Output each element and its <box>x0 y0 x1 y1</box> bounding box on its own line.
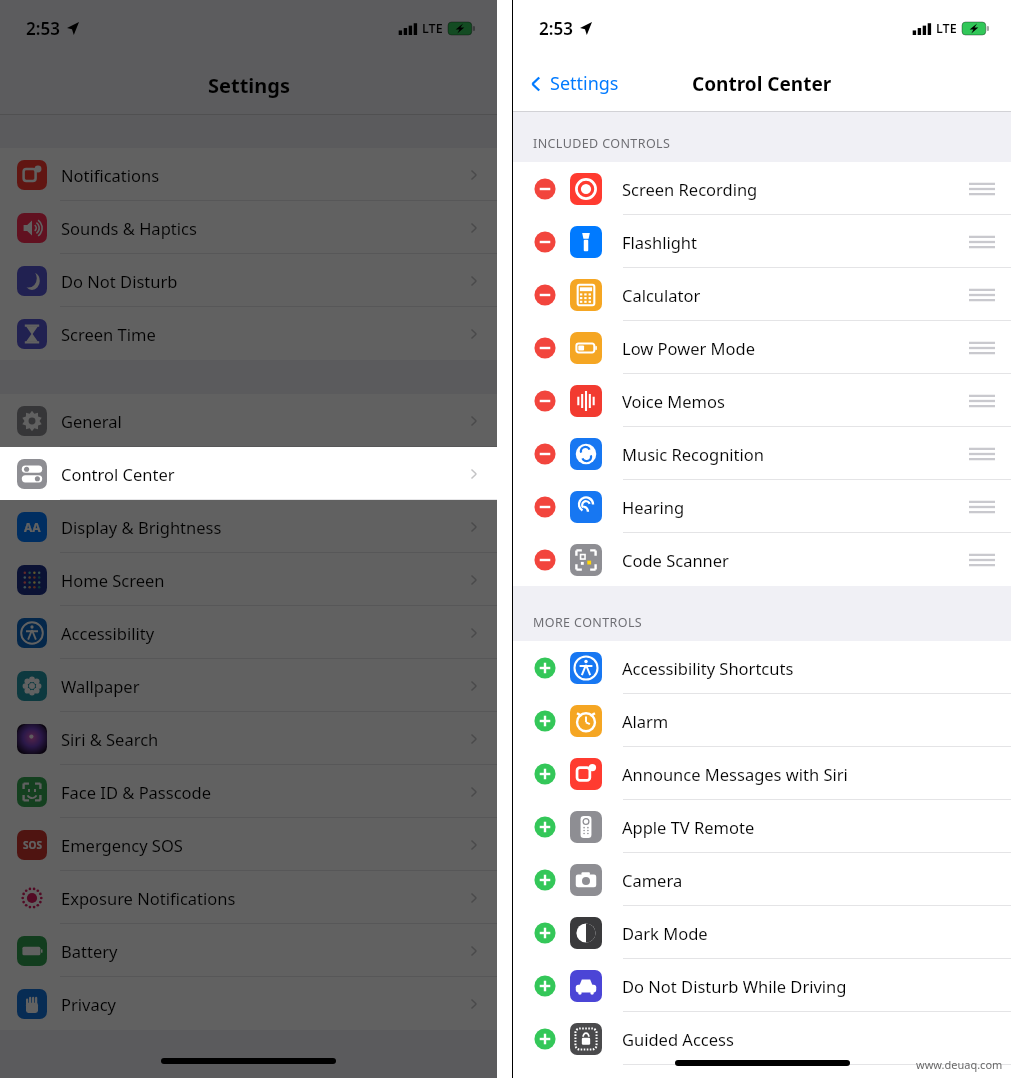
other: Reorder Hearing <box>969 499 995 515</box>
button[interactable]: Add Do Not Disturb While Driving <box>533 974 557 998</box>
button[interactable]: Remove Screen Recording <box>533 177 557 201</box>
staticText: Do Not Disturb While Driving <box>622 975 847 997</box>
staticText: Face ID & Passcode <box>61 781 212 803</box>
staticText: Voice Memos <box>622 390 725 412</box>
staticText: LTE <box>936 20 957 37</box>
button[interactable]: Do Not Disturb <box>0 254 497 307</box>
button[interactable]: Remove Music Recognition <box>513 427 1011 480</box>
staticText: Control Center <box>61 463 175 485</box>
button[interactable]: Remove Calculator <box>513 268 1011 321</box>
staticText: Announce Messages with Siri <box>622 763 848 785</box>
button[interactable]: Add Guided Access <box>533 1027 557 1051</box>
staticText: Settings <box>550 71 619 96</box>
staticText: Guided Access <box>622 1028 734 1050</box>
button[interactable]: Add Accessibility Shortcuts <box>513 641 1011 694</box>
button[interactable]: Home Screen <box>0 553 497 606</box>
button[interactable]: Add Dark Mode <box>533 921 557 945</box>
button[interactable]: Remove Hearing <box>513 480 1011 533</box>
button[interactable]: Notifications <box>0 148 497 201</box>
staticText: Exposure Notifications <box>61 887 236 909</box>
button[interactable]: Remove Calculator <box>533 283 557 307</box>
button[interactable]: Add Announce Messages with Siri <box>533 762 557 786</box>
staticText: General <box>61 410 122 432</box>
staticText: INCLUDED CONTROLS <box>533 135 671 152</box>
button[interactable]: Remove Low Power Mode <box>533 336 557 360</box>
staticText: Sounds & Haptics <box>61 217 197 239</box>
staticText: Code Scanner <box>622 549 729 571</box>
button[interactable]: Settings <box>527 71 619 96</box>
staticText: Notifications <box>61 164 160 186</box>
staticText: www.deuaq.com <box>916 1057 1003 1072</box>
other: Reorder Calculator <box>969 287 995 303</box>
staticText: MORE CONTROLS <box>533 614 643 631</box>
staticText: Hearing <box>622 496 685 518</box>
button[interactable]: Add Camera <box>533 868 557 892</box>
button[interactable]: Sounds & Haptics <box>0 201 497 254</box>
button[interactable]: Add Alarm <box>513 694 1011 747</box>
button[interactable]: Remove Flashlight <box>533 230 557 254</box>
staticText: AA <box>24 519 41 535</box>
other: Reorder Music Recognition <box>969 446 995 462</box>
staticText: Music Recognition <box>622 443 764 465</box>
other: Reorder Code Scanner <box>969 552 995 568</box>
button[interactable]: Add Dark Mode <box>513 906 1011 959</box>
staticText: Display & Brightness <box>61 516 222 538</box>
button[interactable]: Wallpaper <box>0 659 497 712</box>
button[interactable]: Control Center <box>0 447 497 500</box>
staticText: Dark Mode <box>622 922 708 944</box>
other: Reorder Voice Memos <box>969 393 995 409</box>
button[interactable]: Remove Code Scanner <box>533 548 557 572</box>
staticText: 2:53 <box>26 17 60 40</box>
button[interactable]: Add Camera <box>513 853 1011 906</box>
button[interactable]: Siri & Search <box>0 712 497 765</box>
button[interactable]: Remove Voice Memos <box>533 389 557 413</box>
button[interactable]: Accessibility <box>0 606 497 659</box>
other: Reorder Screen Recording <box>969 181 995 197</box>
staticText: Camera <box>622 869 683 891</box>
button[interactable]: Add Apple TV Remote <box>513 800 1011 853</box>
button[interactable]: Privacy <box>0 977 497 1030</box>
other: Reorder Low Power Mode <box>969 340 995 356</box>
button[interactable]: Face ID & Passcode <box>0 765 497 818</box>
staticText: Wallpaper <box>61 675 140 697</box>
staticText: Screen Time <box>61 323 156 345</box>
staticText: Emergency SOS <box>61 834 183 856</box>
staticText: Home Screen <box>61 569 165 591</box>
button[interactable]: Remove Flashlight <box>513 215 1011 268</box>
button[interactable]: Screen Time <box>0 307 497 360</box>
staticText: Flashlight <box>622 231 697 253</box>
button[interactable]: Remove Hearing <box>533 495 557 519</box>
staticText: 2:53 <box>539 17 573 40</box>
staticText: Accessibility <box>61 622 155 644</box>
button[interactable]: AA <box>0 500 497 553</box>
staticText: Calculator <box>622 284 701 306</box>
staticText: Apple TV Remote <box>622 816 755 838</box>
staticText: SOS <box>23 838 42 852</box>
button[interactable]: Add Guided Access <box>513 1012 1011 1065</box>
staticText: Alarm <box>622 710 669 732</box>
button[interactable]: Exposure Notifications <box>0 871 497 924</box>
staticText: Siri & Search <box>61 728 159 750</box>
other: Reorder Flashlight <box>969 234 995 250</box>
staticText: Do Not Disturb <box>61 270 178 292</box>
staticText: Settings <box>208 72 290 99</box>
button[interactable]: General <box>0 394 497 447</box>
button[interactable]: Remove Low Power Mode <box>513 321 1011 374</box>
staticText: Privacy <box>61 993 117 1015</box>
button[interactable]: Add Accessibility Shortcuts <box>533 656 557 680</box>
staticText: Accessibility Shortcuts <box>622 657 794 679</box>
staticText: Screen Recording <box>622 178 758 200</box>
button[interactable]: Remove Voice Memos <box>513 374 1011 427</box>
button[interactable]: Remove Music Recognition <box>533 442 557 466</box>
staticText: Control Center <box>692 71 832 97</box>
staticText: LTE <box>422 20 443 37</box>
button[interactable]: Add Alarm <box>533 709 557 733</box>
button[interactable]: Add Apple TV Remote <box>533 815 557 839</box>
button[interactable]: Remove Code Scanner <box>513 533 1011 586</box>
button[interactable]: Add Announce Messages with Siri <box>513 747 1011 800</box>
button[interactable]: Battery <box>0 924 497 977</box>
button[interactable]: SOS <box>0 818 497 871</box>
button[interactable]: Remove Screen Recording <box>513 162 1011 215</box>
button[interactable]: Add Do Not Disturb While Driving <box>513 959 1011 1012</box>
staticText: Low Power Mode <box>622 337 755 359</box>
